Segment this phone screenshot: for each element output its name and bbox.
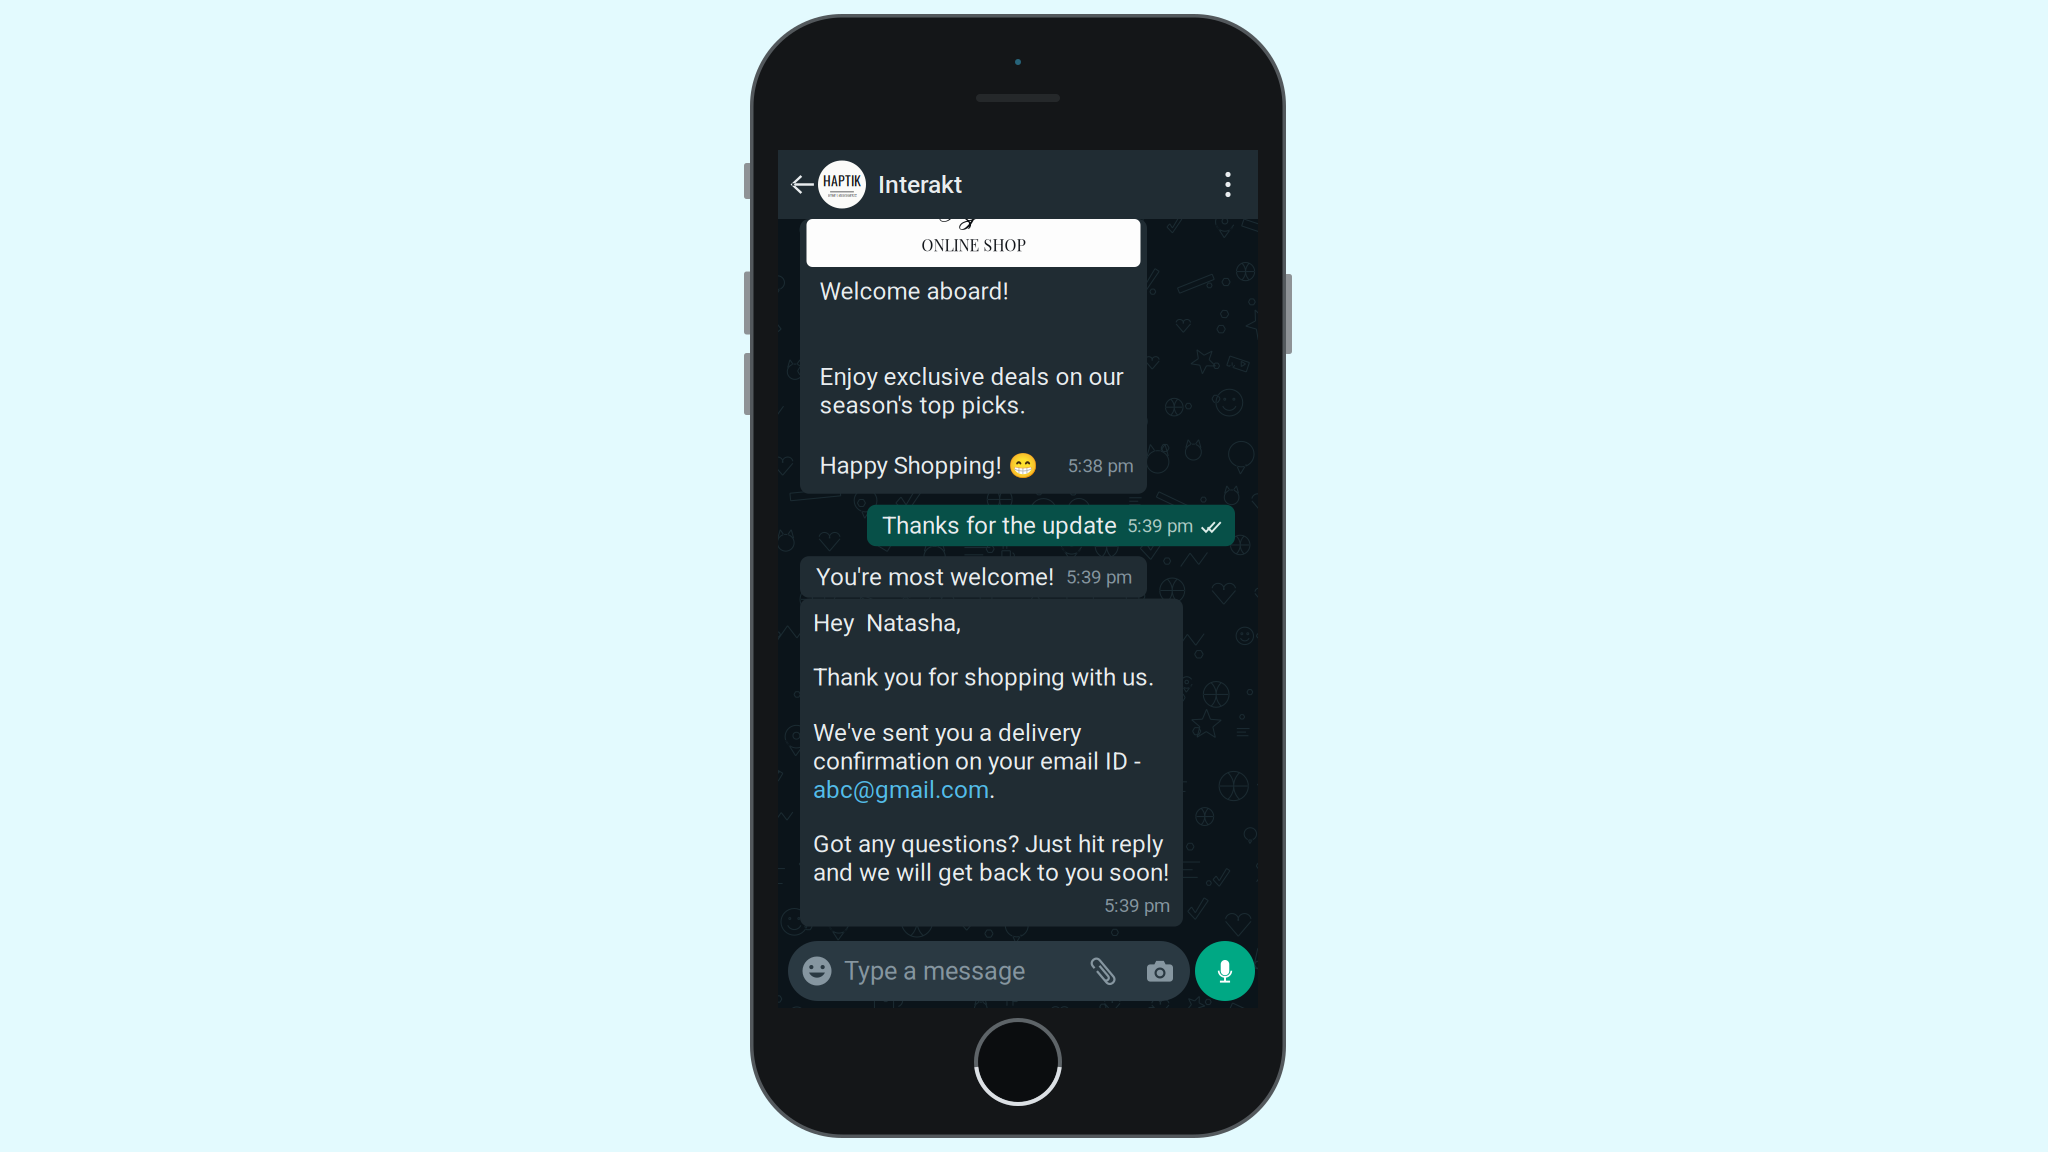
staticText: Enjoy exclusive deals on our [819,362,1123,391]
staticText: HAPTIK [823,170,861,190]
staticText: We've sent you a delivery [813,718,1081,747]
button[interactable]: More options [1207,150,1249,219]
staticText: Interakt [878,170,962,199]
staticText: Lyvia [939,187,1009,233]
staticText: 5:39 pm [1127,515,1193,537]
staticText: ONLINE SHOP [921,234,1025,255]
staticText: Welcome aboard! [819,277,1008,305]
staticText: . [989,775,995,804]
staticText: confirmation on your email ID - [813,747,1141,775]
staticText: Happy Shopping! 😁 [819,451,1037,480]
button[interactable]: Voice message [1195,941,1255,1001]
staticText: You're most welcome! [816,563,1054,591]
button[interactable]: Camera [1136,944,1184,998]
staticText: smart assistance [827,193,856,198]
button[interactable]: Emoji [795,944,839,998]
staticText: Hey Natasha, [813,609,961,637]
staticText: 5:39 pm [1066,566,1132,588]
staticText: 5:39 pm [1104,895,1170,917]
staticText: Thank you for shopping with us. [813,663,1154,691]
button[interactable]: Attach [1074,944,1136,998]
staticText: 5:38 pm [1067,455,1133,477]
button[interactable]: HAPTIK [818,150,962,219]
staticText: and we will get back to you soon! [813,858,1169,887]
button[interactable]: Back [787,150,818,219]
staticText: Got any questions? Just hit reply [813,830,1163,858]
staticText: Thanks for the update [882,511,1117,540]
staticText: abc@gmail.com [813,775,989,804]
staticText: Type a message [844,956,1025,986]
staticText: season's top picks. [819,391,1025,419]
